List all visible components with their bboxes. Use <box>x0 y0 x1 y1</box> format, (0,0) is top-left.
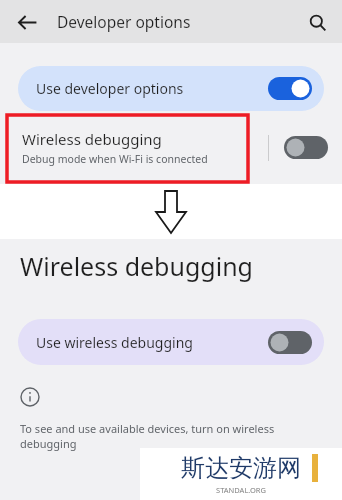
button[interactable]: Search <box>300 5 334 39</box>
staticText: STANDAL.ORG <box>216 485 266 495</box>
staticText: To see and use available devices, turn o… <box>20 421 275 451</box>
button[interactable]: Back <box>10 5 44 39</box>
button[interactable]: Use developer options <box>18 66 324 111</box>
other: Information <box>20 387 40 407</box>
staticText: Debug mode when Wi-Fi is connected <box>22 152 208 166</box>
staticText: Wireless debugging <box>20 249 253 283</box>
button[interactable]: Use wireless debugging <box>18 319 324 365</box>
staticText: Use developer options <box>36 79 184 98</box>
staticText: Wireless debugging <box>22 129 162 149</box>
staticText: 斯达安游网 <box>181 453 301 483</box>
staticText: Use wireless debugging <box>36 333 193 352</box>
staticText: Developer options <box>57 11 191 32</box>
